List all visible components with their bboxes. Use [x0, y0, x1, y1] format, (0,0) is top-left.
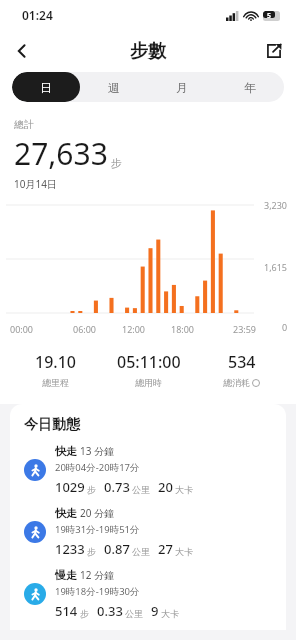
staticText: 0	[282, 321, 288, 333]
staticText: 18:00	[158, 323, 207, 335]
staticText: 大卡	[161, 608, 179, 619]
button[interactable]: 快走	[24, 444, 274, 496]
button[interactable]: 534	[195, 351, 288, 388]
button[interactable]: Back	[0, 30, 44, 72]
button[interactable]: Share	[252, 30, 296, 72]
staticText: 19.10	[35, 351, 76, 373]
button[interactable]: 05:11:00	[102, 351, 195, 388]
staticText: 1233	[55, 540, 85, 558]
staticText: 0.87	[104, 540, 130, 558]
staticText: 3,230	[264, 199, 288, 211]
staticText: 23:59	[207, 323, 256, 335]
staticText: 27	[158, 540, 173, 558]
staticText: 月	[176, 80, 188, 95]
button[interactable]: 月	[148, 72, 216, 102]
staticText: 01:24	[22, 7, 53, 23]
staticText: 20	[158, 478, 173, 496]
staticText: 快走	[55, 506, 77, 520]
staticText: 公里	[132, 546, 150, 557]
staticText: 5	[267, 11, 272, 18]
staticText: 0.73	[104, 478, 130, 496]
staticText: 1,615	[264, 261, 288, 273]
staticText: 公里	[132, 484, 150, 495]
staticText: 大卡	[175, 546, 193, 557]
staticText: 10月14日	[14, 177, 57, 191]
staticText: 總用時	[135, 377, 162, 388]
button[interactable]: 日	[12, 72, 80, 102]
staticText: 總里程	[42, 377, 69, 388]
button[interactable]: 慢走	[24, 568, 274, 620]
staticText: 年	[244, 80, 256, 95]
staticText: 05:11:00	[117, 351, 181, 373]
staticText: 步	[87, 546, 96, 557]
staticText: 20時04分-20時17分	[55, 461, 140, 474]
staticText: 總消耗	[223, 377, 250, 388]
button[interactable]: 19.10	[8, 351, 102, 388]
staticText: 步數	[130, 40, 166, 63]
staticText: 9	[151, 602, 159, 620]
button[interactable]: 年	[216, 72, 284, 102]
staticText: 慢走	[55, 568, 77, 582]
staticText: 公里	[125, 608, 143, 619]
button[interactable]: 快走	[24, 506, 274, 558]
staticText: 步	[111, 156, 122, 170]
staticText: 12 分鐘	[80, 568, 115, 582]
staticText: 12:00	[109, 323, 158, 335]
staticText: 大卡	[175, 484, 193, 495]
staticText: 19時18分-19時30分	[55, 585, 140, 598]
staticText: 06:00	[60, 323, 109, 335]
staticText: 514	[55, 602, 78, 620]
staticText: 27,633	[14, 133, 108, 174]
staticText: 19時31分-19時51分	[55, 523, 140, 536]
staticText: 1029	[55, 478, 85, 496]
staticText: 週	[108, 80, 120, 95]
staticText: 總計	[14, 118, 34, 131]
staticText: 日	[40, 80, 52, 95]
staticText: 今日動態	[24, 416, 80, 434]
staticText: 0.33	[97, 602, 123, 620]
staticText: 00:00	[10, 323, 60, 335]
staticText: 步	[87, 484, 96, 495]
staticText: 13 分鐘	[80, 444, 115, 458]
staticText: 步	[80, 608, 89, 619]
staticText: 534	[228, 351, 256, 373]
staticText: 快走	[55, 444, 77, 458]
staticText: 20 分鐘	[80, 506, 115, 520]
button[interactable]: 週	[80, 72, 148, 102]
